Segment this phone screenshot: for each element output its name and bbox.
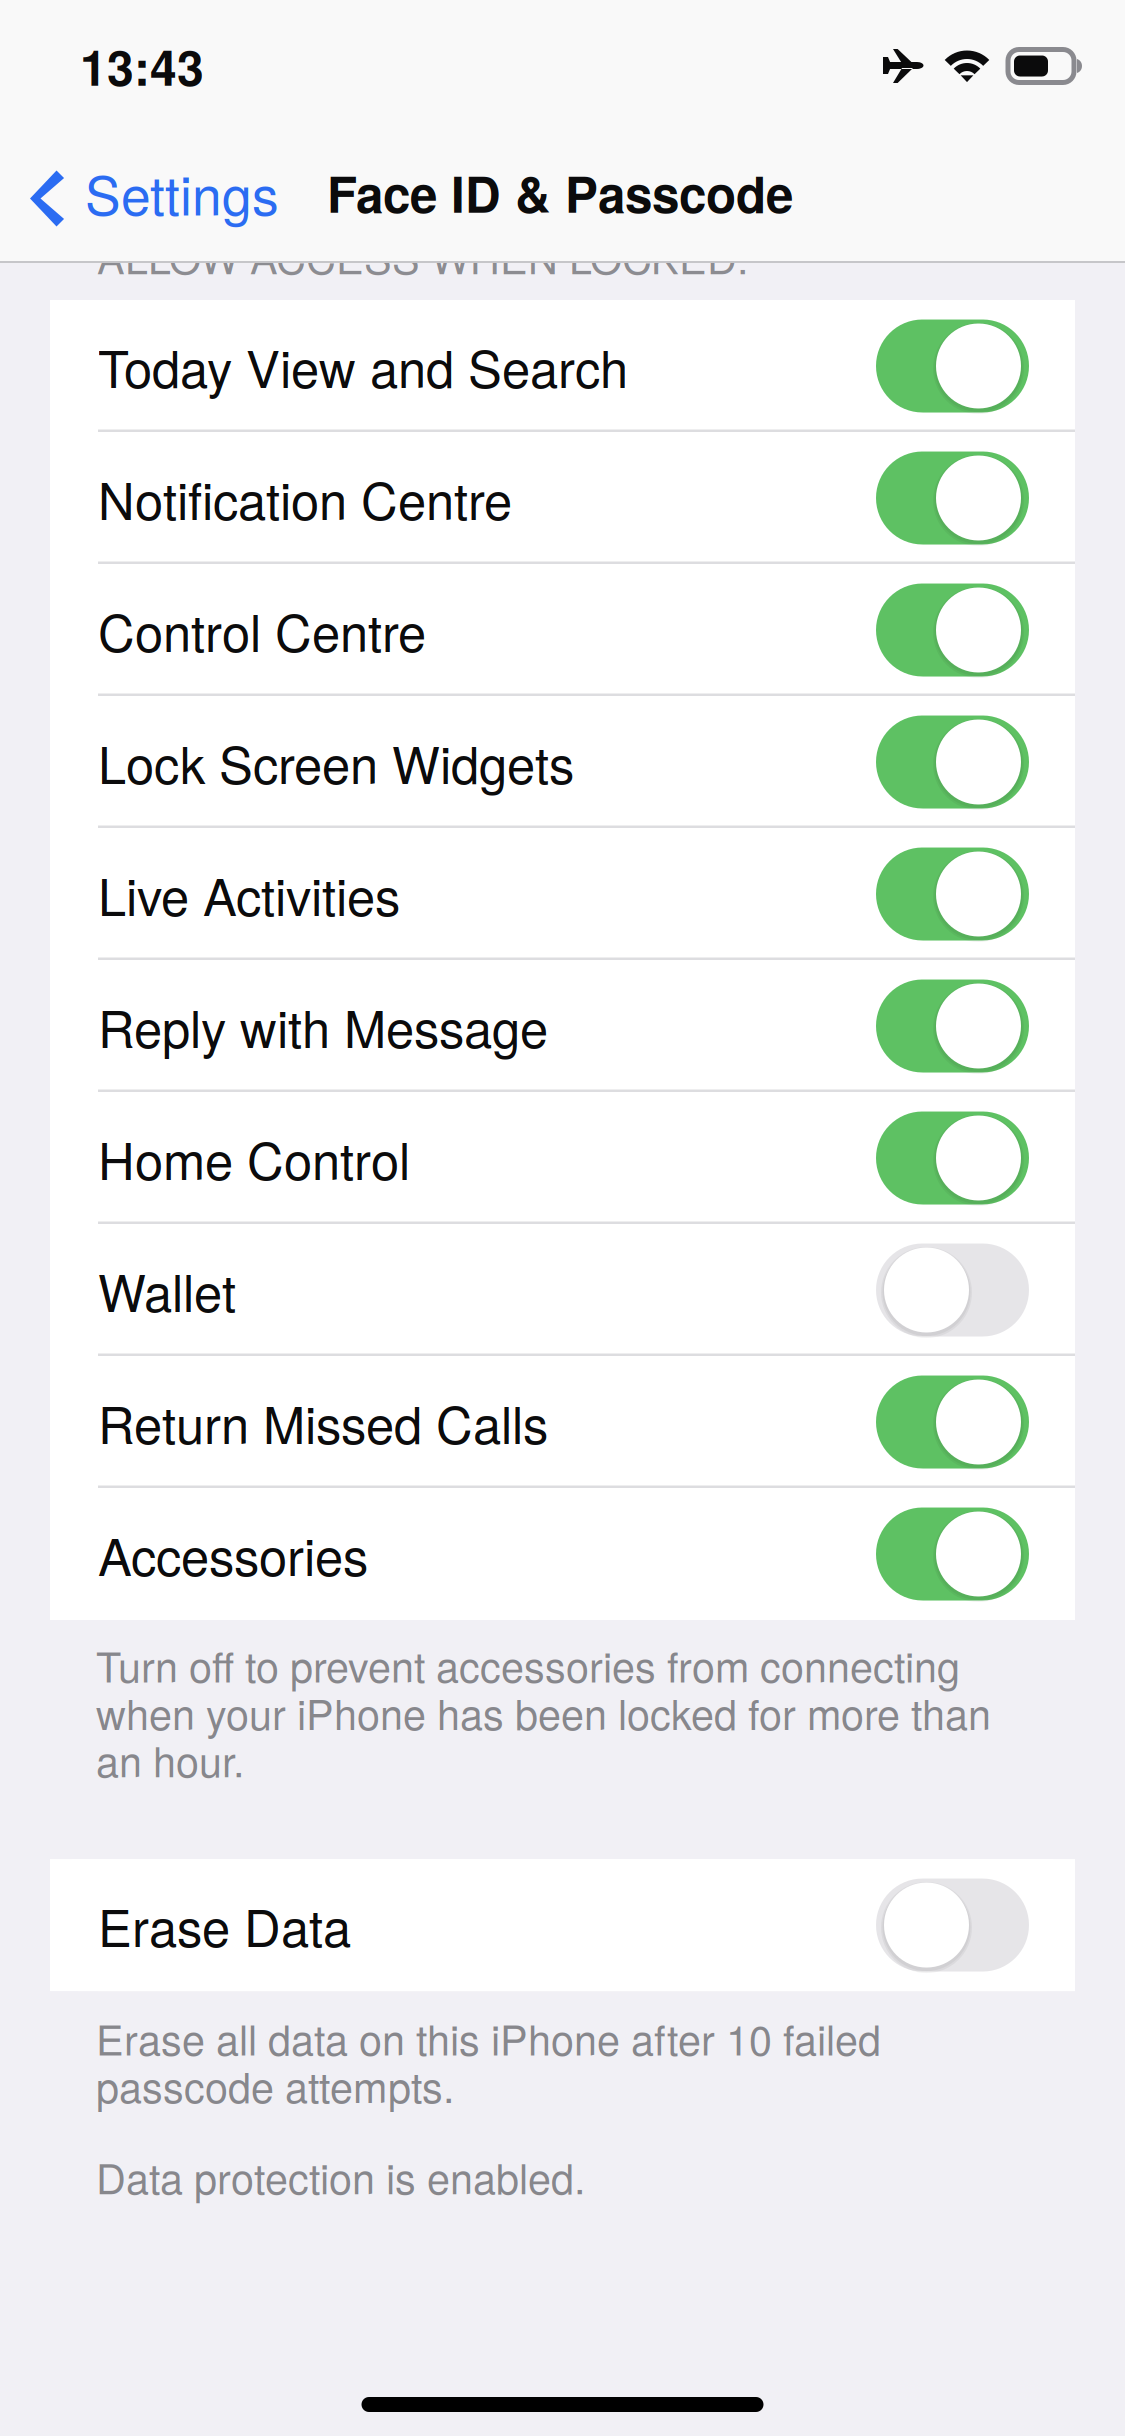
staticText: Notification Centre xyxy=(98,462,512,534)
staticText: Erase Data xyxy=(98,1889,351,1961)
staticText: Control Centre xyxy=(98,594,426,666)
staticText: Face ID & Passcode xyxy=(327,157,793,228)
button[interactable]: Lock Screen Widgets xyxy=(50,696,1075,828)
button[interactable]: Notification Centre xyxy=(50,432,1075,564)
button[interactable]: Control Centre xyxy=(50,564,1075,696)
staticText: Accessories xyxy=(98,1518,368,1590)
button[interactable]: Settings xyxy=(0,132,301,261)
staticText: Settings xyxy=(85,154,279,231)
staticText: Return Missed Calls xyxy=(98,1386,548,1458)
staticText: Turn off to prevent accessories from con… xyxy=(96,1641,991,1783)
button[interactable]: Home Control xyxy=(50,1092,1075,1224)
staticText: Reply with Message xyxy=(98,990,548,1062)
staticText: 13:43 xyxy=(80,32,204,100)
staticText: Erase all data on this iPhone after 10 f… xyxy=(96,2014,881,2109)
button[interactable]: Accessories xyxy=(50,1488,1075,1620)
staticText: ALLOW ACCESS WHEN LOCKED: xyxy=(97,227,748,286)
staticText: Lock Screen Widgets xyxy=(98,726,574,798)
staticText: Data protection is enabled. xyxy=(96,2153,585,2200)
button[interactable]: Wallet xyxy=(50,1224,1075,1356)
button[interactable]: Erase Data xyxy=(50,1859,1075,1991)
button[interactable]: Live Activities xyxy=(50,828,1075,960)
staticText: Wallet xyxy=(98,1254,236,1326)
staticText: Today View and Search xyxy=(98,330,628,402)
button[interactable]: Reply with Message xyxy=(50,960,1075,1092)
button[interactable]: Today View and Search xyxy=(50,300,1075,432)
staticText: Live Activities xyxy=(98,858,400,930)
staticText: Home Control xyxy=(98,1122,410,1194)
button[interactable]: Return Missed Calls xyxy=(50,1356,1075,1488)
